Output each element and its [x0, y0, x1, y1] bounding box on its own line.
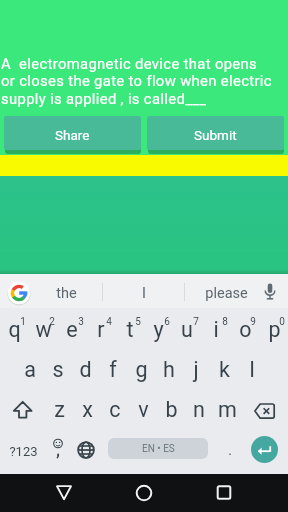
staticText: p — [268, 317, 281, 342]
staticText: . — [228, 442, 232, 458]
button[interactable]: Submit — [147, 116, 284, 150]
staticText: Submit — [194, 127, 237, 143]
button[interactable]: h — [155, 354, 183, 384]
staticText: Share — [55, 127, 90, 143]
staticText: 3 — [78, 316, 84, 328]
staticText: r — [97, 317, 105, 342]
staticText: h — [163, 357, 175, 382]
button[interactable]: u — [173, 314, 201, 344]
button[interactable]: y — [144, 314, 172, 344]
staticText: 1 — [20, 316, 26, 328]
button[interactable]: t — [116, 314, 144, 344]
staticText: c — [109, 397, 121, 422]
button[interactable]: g — [127, 354, 155, 384]
button[interactable]: v — [129, 394, 157, 424]
button[interactable]: please — [199, 283, 253, 303]
button[interactable]: p — [260, 314, 288, 344]
staticText: 0 — [279, 316, 285, 328]
button[interactable] — [7, 281, 31, 305]
staticText: 8 — [222, 316, 228, 328]
staticText: w — [35, 317, 52, 342]
staticText: e — [66, 317, 78, 342]
button[interactable]: i — [202, 314, 230, 344]
staticText: ?123 — [9, 444, 38, 459]
button[interactable]: a — [16, 354, 44, 384]
staticText: n — [193, 397, 205, 422]
button[interactable]: z — [45, 394, 73, 424]
button[interactable]: Share — [4, 116, 141, 150]
staticText: A electromagnetic device that opens or c… — [1, 55, 272, 107]
button[interactable]: w — [29, 314, 57, 344]
staticText: g — [135, 357, 148, 382]
staticText: m — [218, 397, 237, 422]
staticText: I — [142, 285, 146, 302]
button[interactable]: I — [124, 283, 164, 303]
staticText: a — [24, 357, 36, 382]
staticText: d — [79, 357, 92, 382]
staticText: b — [165, 397, 178, 422]
button[interactable] — [77, 441, 95, 459]
button[interactable] — [251, 436, 278, 463]
staticText: t — [126, 317, 134, 342]
button[interactable] — [55, 483, 73, 501]
staticText: v — [138, 397, 149, 422]
button[interactable]: o — [231, 314, 259, 344]
button[interactable]: q — [0, 314, 28, 344]
staticText: q — [8, 317, 21, 342]
button[interactable] — [262, 282, 278, 302]
staticText: the — [56, 285, 77, 302]
button[interactable]: r — [87, 314, 115, 344]
button[interactable]: ?123 — [2, 441, 44, 461]
button[interactable]: j — [182, 354, 210, 384]
button[interactable]: d — [71, 354, 99, 384]
button[interactable]: m — [213, 394, 241, 424]
staticText: o — [239, 317, 252, 342]
staticText: k — [219, 357, 230, 382]
button[interactable]: b — [157, 394, 185, 424]
staticText: 4 — [106, 316, 112, 328]
button[interactable]: n — [185, 394, 213, 424]
button[interactable]: e — [58, 314, 86, 344]
button[interactable] — [13, 401, 33, 419]
button[interactable]: c — [101, 394, 129, 424]
button[interactable] — [215, 483, 233, 501]
staticText: y — [153, 317, 164, 342]
staticText: f — [109, 357, 117, 382]
staticText: x — [82, 397, 93, 422]
staticText: EN • ES — [142, 443, 175, 455]
button[interactable] — [50, 437, 68, 461]
button[interactable]: x — [73, 394, 101, 424]
button[interactable]: . — [220, 440, 240, 460]
staticText: 2 — [49, 316, 55, 328]
staticText: s — [52, 357, 64, 382]
staticText: u — [181, 317, 193, 342]
button[interactable]: the — [44, 283, 88, 303]
staticText: 9 — [250, 316, 256, 328]
button[interactable]: s — [44, 354, 72, 384]
button[interactable]: k — [210, 354, 238, 384]
staticText: j — [193, 357, 199, 382]
button[interactable]: EN • ES — [108, 438, 208, 459]
staticText: z — [54, 397, 65, 422]
staticText: 5 — [135, 316, 141, 328]
staticText: l — [249, 357, 255, 382]
button[interactable]: f — [99, 354, 127, 384]
button[interactable] — [254, 403, 276, 421]
button[interactable]: l — [238, 354, 266, 384]
staticText: 6 — [164, 316, 170, 328]
button[interactable] — [135, 484, 153, 502]
staticText: please — [205, 285, 248, 302]
staticText: i — [213, 317, 219, 342]
staticText: 7 — [193, 316, 199, 328]
